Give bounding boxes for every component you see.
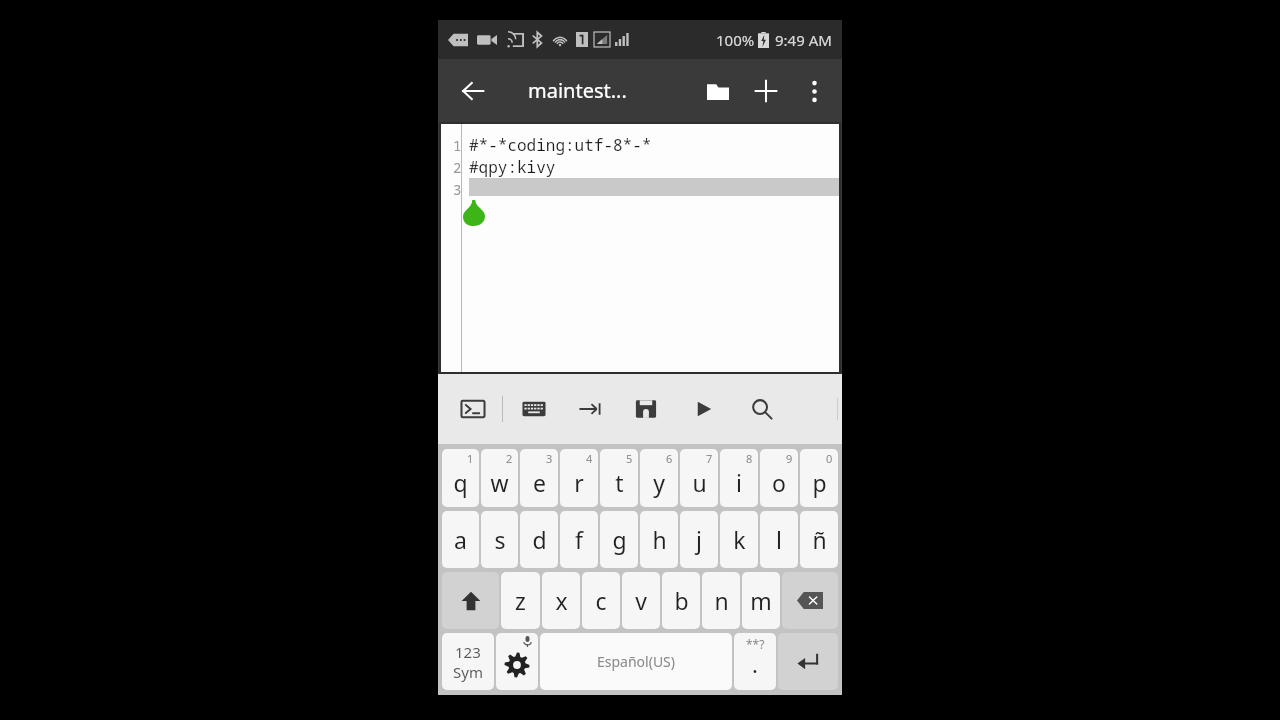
staticText: o — [772, 467, 786, 498]
button[interactable]: Keyboard — [517, 392, 551, 426]
button[interactable]: Enter — [778, 633, 838, 690]
staticText: r — [574, 467, 584, 498]
staticText: ñ — [812, 524, 827, 555]
button[interactable]: Search — [745, 392, 779, 426]
button[interactable]: 6 — [640, 449, 678, 507]
staticText: maintest... — [528, 77, 627, 104]
button[interactable]: 5 — [600, 449, 638, 507]
button[interactable]: Insert tab — [573, 392, 607, 426]
staticText: x — [555, 585, 568, 616]
button[interactable]: Period — [734, 633, 776, 690]
staticText: t — [615, 467, 624, 498]
staticText: 0 — [826, 451, 833, 466]
staticText: 2 — [453, 158, 462, 177]
button[interactable]: v — [622, 572, 660, 629]
staticText: 100% — [716, 30, 755, 50]
button[interactable]: h — [640, 511, 678, 568]
staticText: 8 — [746, 451, 753, 466]
staticText: b — [674, 585, 689, 616]
staticText: #*-*coding:utf-8*-* — [469, 134, 652, 156]
staticText: w — [490, 467, 509, 498]
staticText: g — [612, 524, 627, 555]
button[interactable]: New file — [742, 67, 790, 115]
staticText: 1 — [453, 136, 462, 155]
staticText: 3 — [546, 451, 553, 466]
staticText: #qpy:kivy — [469, 156, 556, 178]
staticText: Sym — [453, 662, 483, 682]
button[interactable]: f — [560, 511, 598, 568]
button[interactable]: Terminal — [456, 392, 490, 426]
button[interactable]: x — [542, 572, 580, 629]
staticText: i — [736, 467, 742, 498]
button[interactable]: s — [481, 511, 518, 568]
staticText: a — [454, 524, 467, 555]
button[interactable]: a — [442, 511, 479, 568]
staticText: 1 — [467, 451, 474, 466]
button[interactable]: 3 — [520, 449, 558, 507]
button[interactable]: Save — [629, 392, 663, 426]
button[interactable]: ñ — [800, 511, 838, 568]
staticText: 4 — [586, 451, 593, 466]
button[interactable]: c — [582, 572, 620, 629]
button[interactable]: n — [702, 572, 740, 629]
staticText: f — [575, 524, 583, 555]
button[interactable]: Space, Español (US) — [540, 633, 732, 690]
staticText: 7 — [706, 451, 713, 466]
staticText: 9 — [786, 451, 793, 466]
staticText: m — [750, 585, 772, 616]
staticText: l — [776, 524, 782, 555]
button[interactable]: l — [760, 511, 798, 568]
staticText: 123 — [455, 642, 481, 662]
staticText: . — [752, 649, 758, 679]
button[interactable]: More options — [790, 67, 838, 115]
button[interactable]: 8 — [720, 449, 758, 507]
button[interactable]: Open folder — [694, 67, 742, 115]
staticText: k — [733, 524, 746, 555]
staticText: n — [714, 585, 729, 616]
staticText: u — [692, 467, 707, 498]
staticText: 5 — [626, 451, 633, 466]
button[interactable]: m — [742, 572, 780, 629]
staticText: d — [532, 524, 547, 555]
button[interactable]: 9 — [760, 449, 798, 507]
button[interactable]: d — [520, 511, 558, 568]
button[interactable]: 7 — [680, 449, 718, 507]
button[interactable]: 0 — [800, 449, 838, 507]
button[interactable]: 2 — [481, 449, 518, 507]
button[interactable]: Backspace — [782, 572, 838, 629]
staticText: 3 — [453, 180, 462, 199]
button[interactable]: 4 — [560, 449, 598, 507]
staticText: v — [635, 585, 647, 616]
staticText: j — [696, 524, 702, 555]
button[interactable]: Shift — [442, 572, 499, 629]
button[interactable]: Settings — [496, 633, 538, 690]
button[interactable]: j — [680, 511, 718, 568]
button[interactable]: Symbols — [442, 633, 494, 690]
button[interactable]: g — [600, 511, 638, 568]
button[interactable]: k — [720, 511, 758, 568]
staticText: z — [515, 585, 526, 616]
staticText: p — [812, 467, 827, 498]
staticText: Español(US) — [597, 652, 676, 671]
button[interactable]: Run — [687, 392, 721, 426]
staticText: c — [595, 585, 607, 616]
button[interactable]: 1 — [442, 449, 479, 507]
staticText: y — [653, 467, 665, 498]
staticText: q — [453, 467, 468, 498]
staticText: 6 — [666, 451, 673, 466]
staticText: s — [494, 524, 506, 555]
button[interactable]: b — [662, 572, 700, 629]
staticText: **? — [746, 636, 765, 652]
staticText: 9:49 AM — [775, 30, 832, 50]
staticText: 2 — [506, 451, 513, 466]
button[interactable]: Back — [451, 69, 495, 113]
button[interactable]: z — [501, 572, 540, 629]
staticText: h — [652, 524, 667, 555]
staticText: e — [533, 467, 546, 498]
